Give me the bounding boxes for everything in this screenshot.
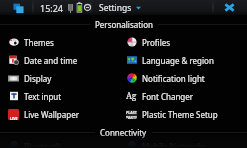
staticText: PLASTIC bbox=[126, 110, 137, 115]
button[interactable]: Display bbox=[0, 69, 123, 87]
staticText: Notification light bbox=[142, 73, 205, 84]
button[interactable]: AgC bbox=[123, 87, 247, 105]
button[interactable]: Close bbox=[220, 0, 238, 15]
button[interactable]: Date and time bbox=[0, 51, 123, 69]
button[interactable]: Settings bbox=[99, 2, 141, 14]
staticText: Plastic Theme Setup bbox=[142, 109, 218, 120]
button[interactable]: PLASTIC bbox=[123, 105, 247, 123]
staticText: 15:24 bbox=[40, 2, 64, 14]
button[interactable]: Recent apps bbox=[12, 2, 24, 14]
staticText: Profiles bbox=[142, 37, 171, 48]
staticText: LIVE bbox=[10, 116, 18, 120]
staticText: Bluetooth bbox=[24, 141, 62, 148]
staticText: Connectivity bbox=[100, 127, 147, 138]
button[interactable]: Profiles bbox=[123, 33, 247, 51]
staticText: Date and time bbox=[24, 55, 78, 66]
staticText: Live Wallpaper bbox=[24, 109, 79, 120]
staticText: Font Changer bbox=[142, 91, 194, 102]
staticText: PARTS bbox=[126, 115, 137, 119]
button[interactable]: Themes bbox=[0, 33, 123, 51]
button[interactable]: Notification light bbox=[123, 69, 247, 87]
button[interactable]: Bluetooth bbox=[0, 141, 123, 148]
button[interactable]: LIVE bbox=[0, 105, 123, 123]
staticText: Settings bbox=[99, 2, 132, 14]
staticText: AgC bbox=[126, 90, 137, 102]
staticText: Mobile Networks bbox=[142, 141, 206, 148]
staticText: Personalisation bbox=[95, 19, 153, 30]
staticText: Language & region bbox=[142, 55, 214, 66]
staticText: Text input bbox=[24, 91, 62, 102]
staticText: Themes bbox=[24, 37, 54, 48]
button[interactable]: Language & region bbox=[123, 51, 247, 69]
button[interactable]: Text input bbox=[0, 87, 123, 105]
button[interactable]: Mobile Networks bbox=[123, 141, 247, 148]
staticText: Display bbox=[24, 73, 52, 84]
